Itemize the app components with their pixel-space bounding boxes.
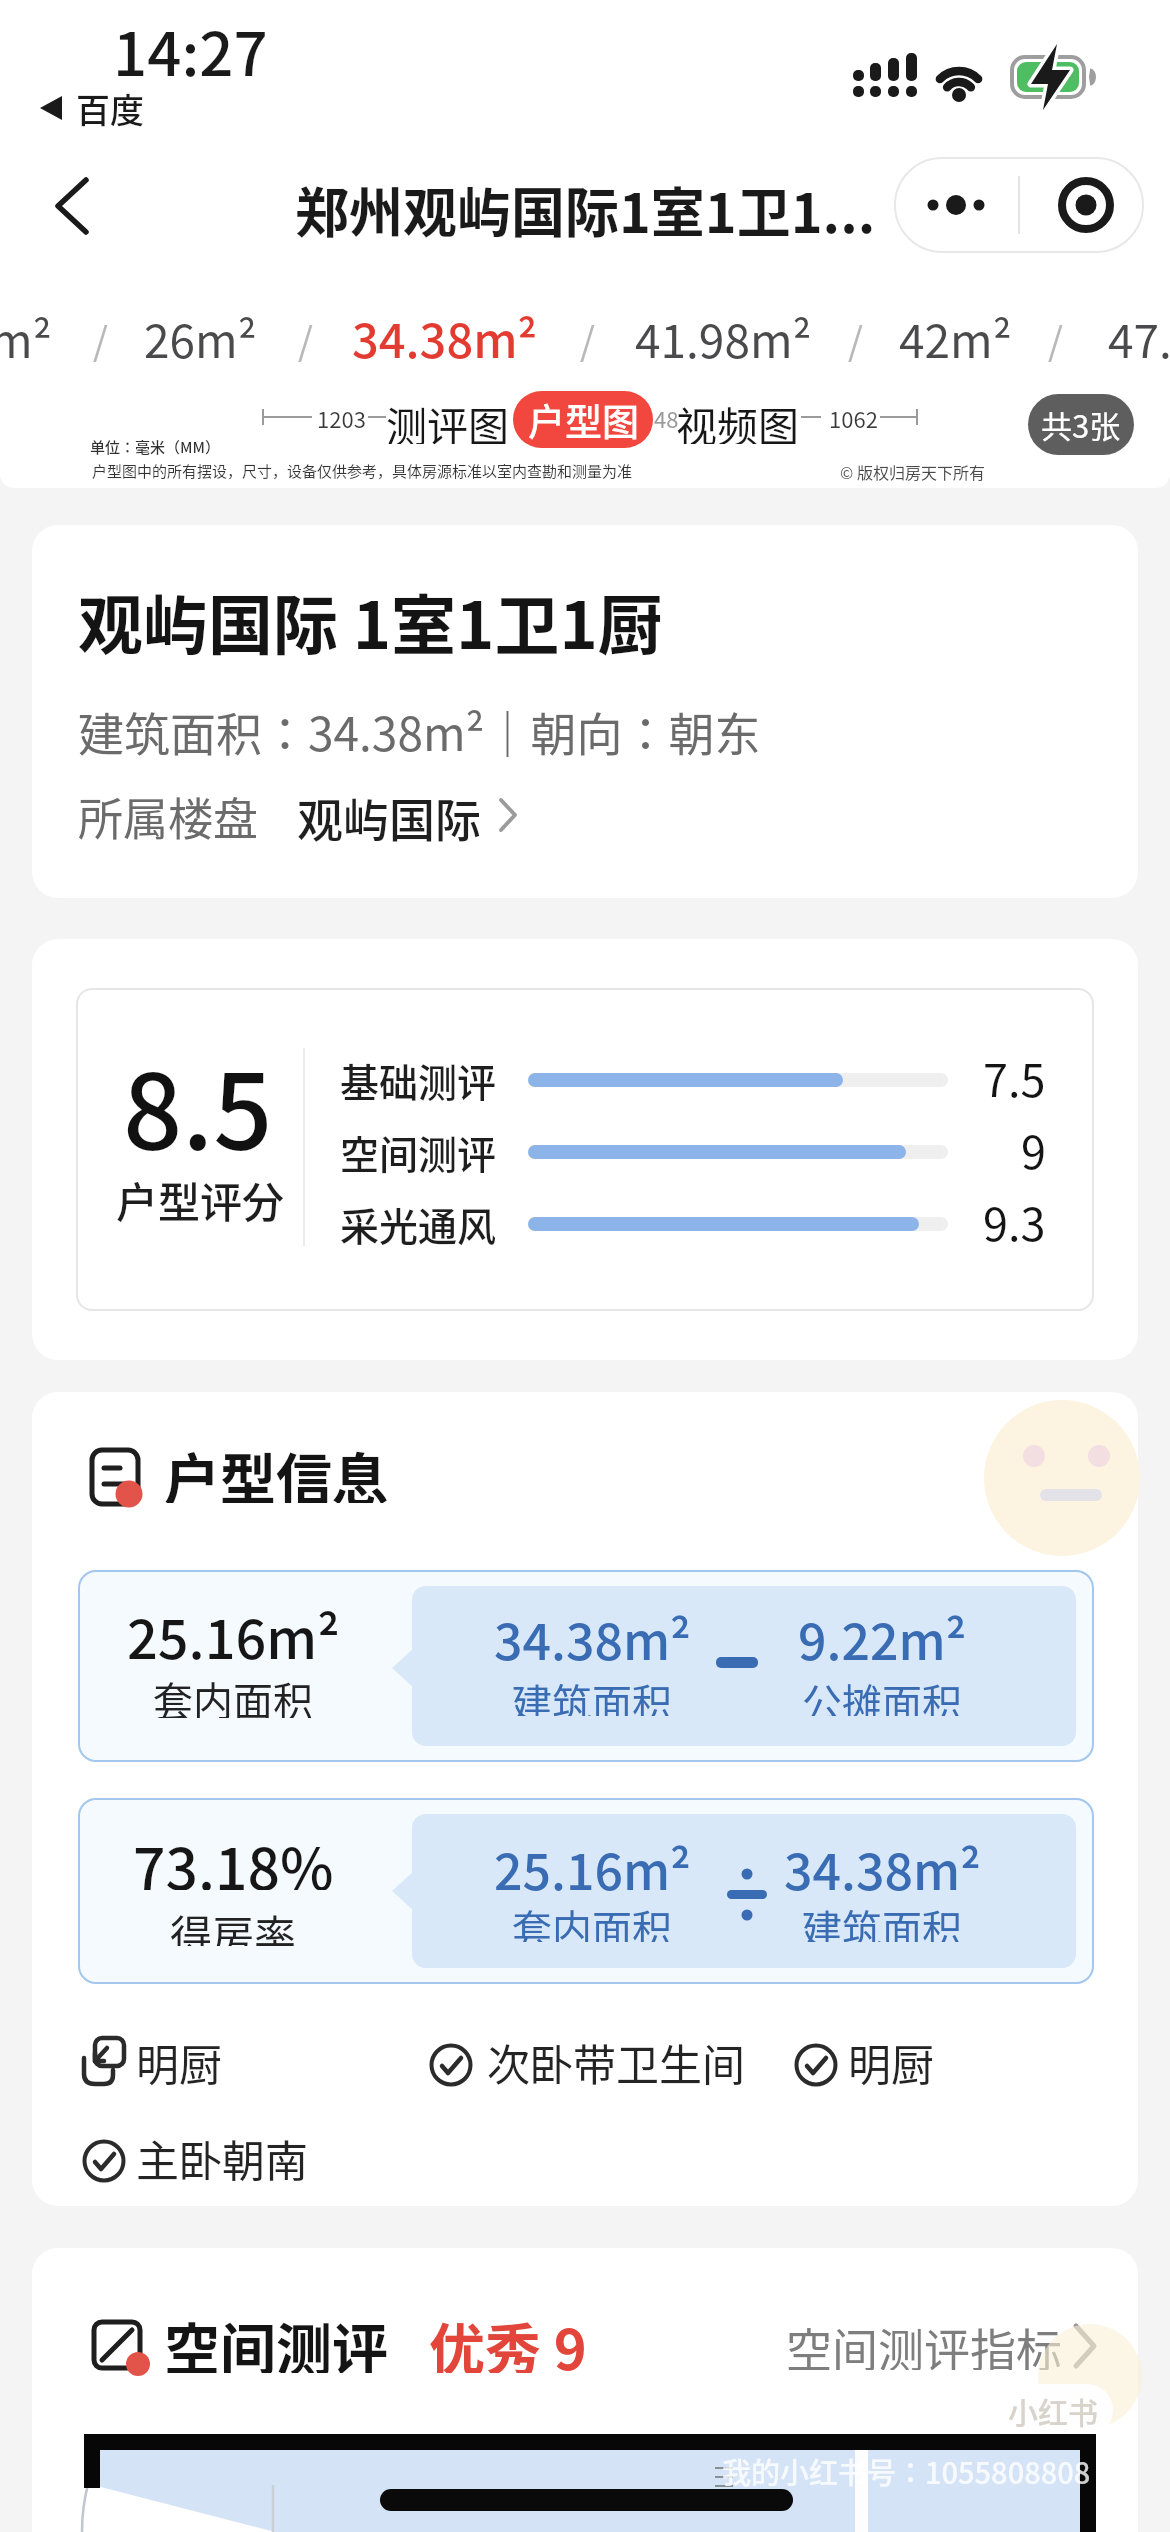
button[interactable]: 所属楼盘 [78, 784, 678, 846]
button[interactable]: 空间测评指标 [786, 2314, 1086, 2370]
button[interactable] [900, 160, 1140, 250]
staticText: 所属楼盘 [78, 784, 259, 846]
button[interactable]: 视频图 [666, 394, 808, 444]
staticText: / [848, 311, 863, 366]
staticText: 我的小红书号：1055808808 [722, 2450, 1091, 2492]
staticText: 明厨 [848, 2031, 934, 2087]
staticText: 共3张 [1041, 402, 1121, 447]
staticText: 户型图中的所有摆设，尺寸，设备仅供参考，具体房源标准以室内查勘和测量为准 [92, 460, 633, 482]
staticText: 郑州观屿国际1室1卫1... [295, 170, 876, 242]
staticText: 34.38m² [352, 303, 538, 371]
button[interactable]: 42m² [895, 304, 1015, 372]
staticText: 户型图 [528, 393, 639, 447]
staticText: / [580, 311, 595, 366]
staticText: 25.16m² [494, 1832, 691, 1894]
staticText: 14:27 [113, 6, 268, 93]
staticText: 34.38m² [784, 1832, 981, 1894]
button[interactable]: 测评图 [376, 394, 518, 444]
staticText: 15m² [0, 305, 52, 372]
staticText: 测评图 [386, 394, 509, 444]
staticText: 套内面积 [512, 1898, 672, 1942]
staticText: 73.18% [133, 1824, 334, 1890]
staticText: 户型评分 [116, 1169, 285, 1225]
staticText: 主卧朝南 [136, 2127, 308, 2183]
staticText: 明厨 [136, 2031, 222, 2087]
staticText: 41.98m² [635, 305, 812, 372]
button[interactable]: 26m² [140, 304, 260, 372]
staticText: / [1048, 311, 1063, 366]
staticText: 建筑面积 [512, 1672, 672, 1716]
staticText: 观屿国际 [297, 784, 481, 846]
staticText: 26m² [144, 305, 257, 372]
staticText: 采光通风 [340, 1196, 497, 1252]
staticText: / [298, 311, 313, 366]
button[interactable]: 41.98m² [628, 304, 818, 372]
staticText: 建筑面积 [802, 1898, 962, 1942]
staticText: 百度 [76, 84, 144, 128]
staticText: 空间测评 [164, 2305, 388, 2373]
staticText: 7.5 [983, 1045, 1046, 1105]
staticText: 8.5 [123, 1029, 273, 1163]
staticText: 优秀 9 [429, 2305, 587, 2373]
staticText: 户型信息 [164, 1435, 388, 1503]
staticText: © 版权归房天下所有 [840, 460, 985, 483]
button[interactable]: 百度 [76, 84, 186, 128]
staticText: 公摊面积 [802, 1672, 962, 1716]
staticText: 次卧带卫生间 [487, 2031, 745, 2087]
staticText: 48 [654, 402, 679, 434]
staticText: / [93, 311, 108, 366]
staticText: 空间测评指标 [786, 2314, 1062, 2370]
staticText: 套内面积 [153, 1670, 313, 1718]
staticText: 9 [1021, 1117, 1046, 1177]
staticText: 单位：毫米（MM） [90, 436, 220, 458]
staticText: 建筑面积：34.38m²｜朝向：朝东 [78, 698, 761, 758]
staticText: 34.38m² [494, 1602, 691, 1666]
staticText: 基础测评 [340, 1052, 497, 1108]
staticText: 小红书 [1008, 2389, 1098, 2432]
staticText: 47.56m² [1108, 305, 1170, 372]
staticText: 9.3 [983, 1189, 1046, 1249]
staticText: 空间测评 [340, 1124, 497, 1180]
staticText: 9.22m² [798, 1602, 967, 1666]
button[interactable]: 户型图 [513, 391, 653, 448]
staticText: 得房率 [170, 1902, 297, 1946]
staticText: 1062 [829, 402, 878, 434]
staticText: 25.16m² [127, 1596, 340, 1664]
staticText: 视频图 [676, 394, 799, 444]
staticText: 42m² [899, 305, 1012, 372]
staticText: 1203 [317, 402, 366, 434]
button[interactable]: 34.38m² [350, 302, 540, 372]
button[interactable]: 47.56m² [1108, 304, 1170, 372]
button[interactable] [52, 176, 92, 236]
staticText: 观屿国际 1室1卫1厨 [78, 574, 663, 658]
